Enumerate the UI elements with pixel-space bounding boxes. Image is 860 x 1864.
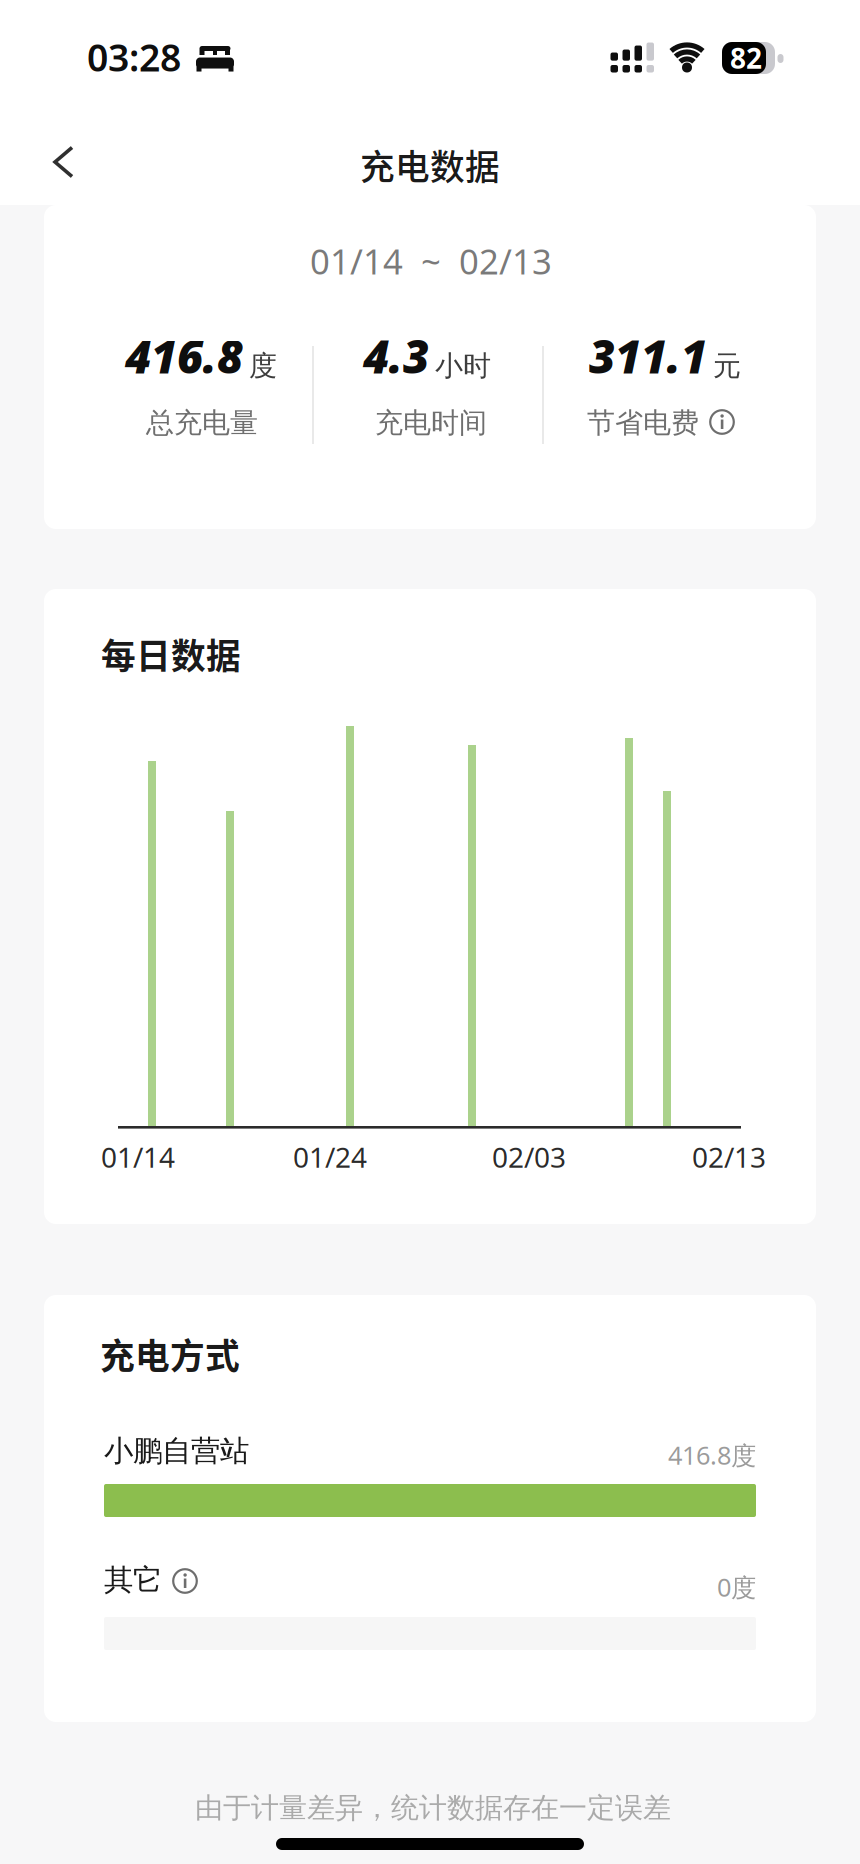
staticText: 02/03 (492, 1138, 566, 1176)
staticText: 度 (249, 349, 277, 383)
staticText: 其它 (104, 1562, 162, 1598)
staticText: 416.8 (125, 326, 243, 386)
staticText: 311.1 (589, 326, 707, 386)
staticText: 01/14 ~ 02/13 (310, 238, 552, 284)
staticText: 总充电量 (146, 406, 258, 440)
staticText: 4.3 (363, 326, 429, 386)
staticText: 03:28 (87, 32, 181, 82)
staticText: 每日数据 (101, 629, 241, 679)
staticText: 01/14 (101, 1138, 175, 1176)
staticText: 充电数据 (360, 140, 500, 190)
staticText: 元 (713, 349, 741, 383)
staticText: 充电时间 (375, 406, 487, 440)
staticText: 小时 (435, 349, 491, 383)
staticText: 01/24 (293, 1138, 367, 1176)
staticText: 节省电费 (587, 406, 699, 440)
staticText: 充电方式 (100, 1329, 240, 1379)
button[interactable]: 节省电费说明 (709, 409, 735, 435)
staticText: 82 (730, 39, 762, 77)
button[interactable]: 其它说明 (172, 1568, 198, 1594)
staticText: 由于计量差异，统计数据存在一定误差 (195, 1791, 671, 1825)
staticText: 416.8度 (668, 1438, 756, 1472)
staticText: 0度 (717, 1570, 756, 1604)
staticText: 小鹏自营站 (104, 1433, 249, 1469)
button[interactable]: Back (53, 145, 74, 178)
staticText: 02/13 (692, 1138, 766, 1176)
